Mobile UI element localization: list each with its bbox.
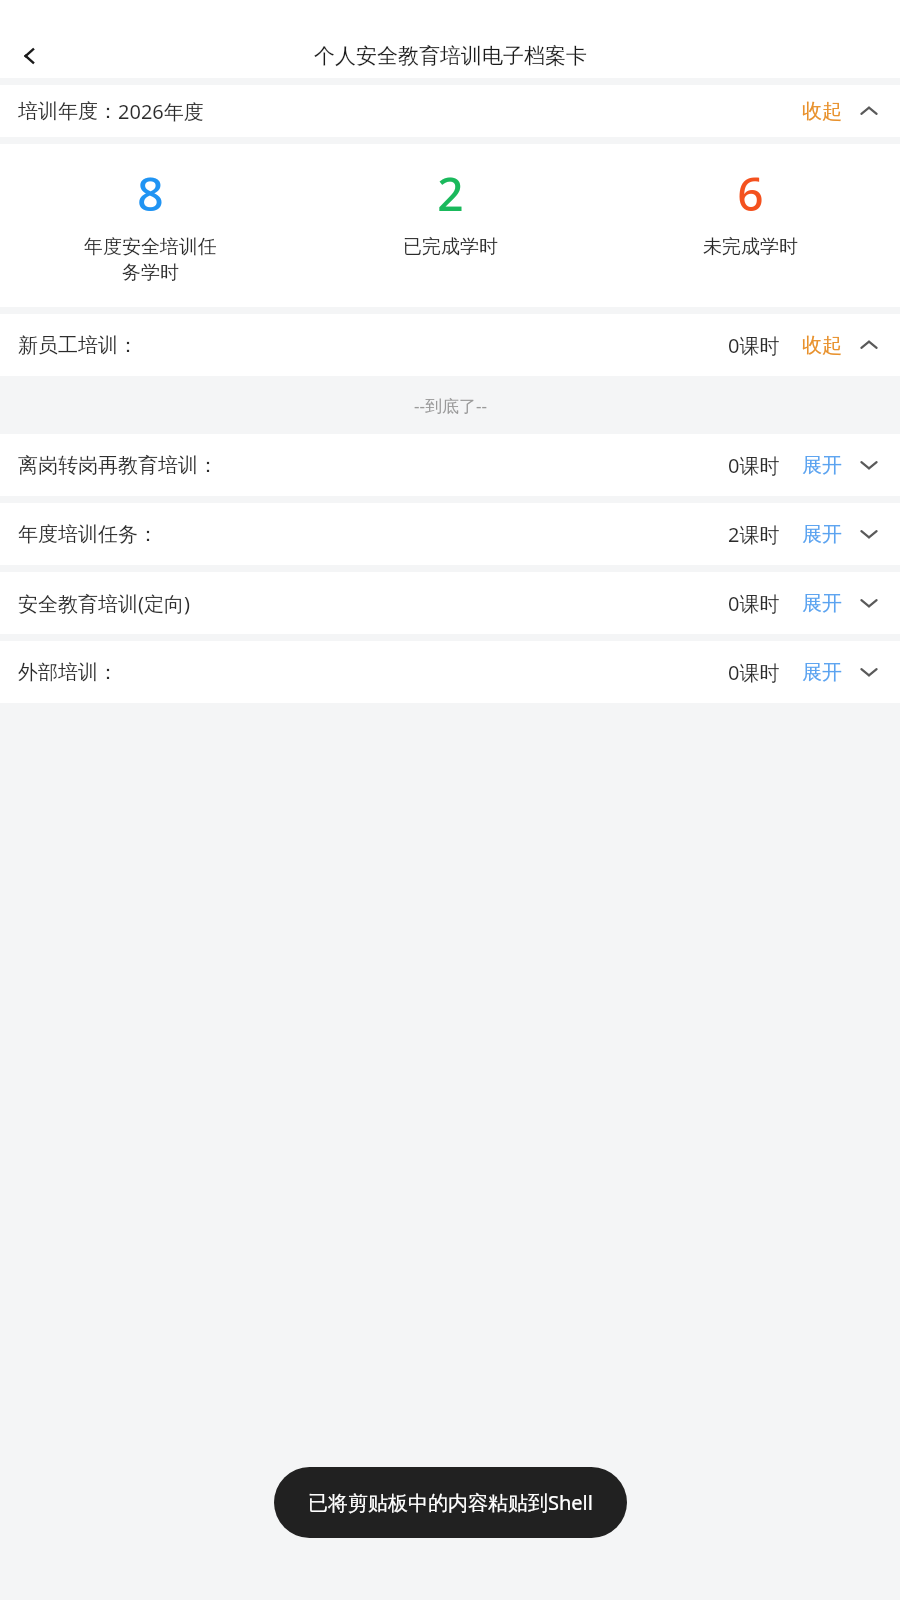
staticText: 离岗转岗再教育培训： — [18, 453, 218, 478]
staticText: 已将剪贴板中的内容粘贴到Shell — [308, 1489, 593, 1516]
button[interactable]: 年度培训任务： — [0, 503, 900, 565]
button[interactable]: 新员工培训： — [0, 314, 900, 376]
staticText: 0课时 — [728, 590, 780, 617]
staticText: 收起 — [802, 99, 842, 124]
staticText: 展开 — [802, 453, 842, 478]
staticText: 个人安全教育培训电子档案卡 — [314, 43, 587, 69]
button[interactable]: 安全教育培训(定向) — [0, 572, 900, 634]
button[interactable]: Back — [8, 34, 52, 78]
staticText: 8 — [137, 162, 164, 225]
staticText: --到底了-- — [414, 394, 487, 417]
staticText: 外部培训： — [18, 660, 118, 685]
staticText: 0课时 — [728, 452, 780, 479]
staticText: 新员工培训： — [18, 333, 138, 358]
staticText: 0课时 — [728, 659, 780, 686]
staticText: 年度培训任务： — [18, 522, 158, 547]
button[interactable]: 2 — [300, 162, 600, 259]
staticText: 6 — [737, 162, 764, 225]
button[interactable]: 8 — [0, 162, 300, 285]
button[interactable]: 培训年度： — [0, 85, 900, 137]
staticText: 2课时 — [728, 521, 780, 548]
staticText: 未完成学时 — [703, 235, 798, 259]
staticText: 年度安全培训任 务学时 — [84, 235, 217, 285]
staticText: 收起 — [802, 333, 842, 358]
staticText: 培训年度： — [18, 99, 118, 124]
button[interactable]: 已将剪贴板中的内容粘贴到Shell — [274, 1467, 627, 1538]
button[interactable]: 外部培训： — [0, 641, 900, 703]
staticText: 0课时 — [728, 332, 780, 359]
staticText: 2026年度 — [118, 98, 204, 125]
staticText: 已完成学时 — [403, 235, 498, 259]
button[interactable]: 6 — [600, 162, 900, 259]
staticText: 安全教育培训(定向) — [18, 590, 190, 617]
staticText: 展开 — [802, 591, 842, 616]
button[interactable]: 离岗转岗再教育培训： — [0, 434, 900, 496]
staticText: 展开 — [802, 522, 842, 547]
staticText: 2 — [437, 162, 464, 225]
staticText: 展开 — [802, 660, 842, 685]
